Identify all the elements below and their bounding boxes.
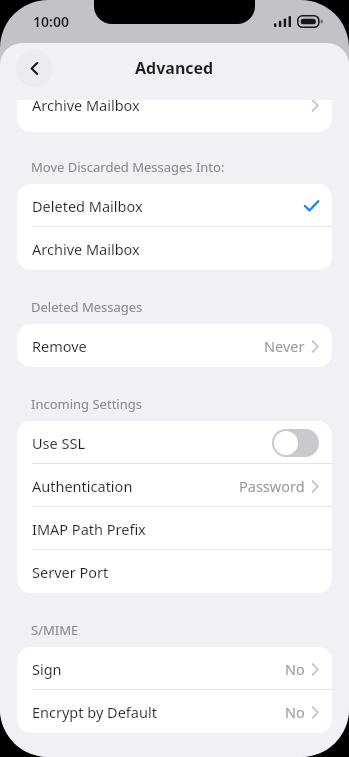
staticText: Authentication — [32, 476, 133, 496]
staticText: Never — [264, 336, 305, 356]
staticText: Deleted Messages — [31, 298, 143, 316]
button[interactable]: IMAP Path Prefix — [17, 507, 332, 550]
button[interactable]: Archive Mailbox — [17, 227, 332, 270]
button[interactable]: Back — [16, 50, 53, 87]
staticText: No — [285, 702, 305, 722]
staticText: Incoming Settings — [31, 395, 142, 413]
staticText: S/MIME — [31, 621, 79, 639]
staticText: IMAP Path Prefix — [32, 519, 146, 539]
staticText: No — [285, 659, 305, 679]
button[interactable]: Encrypt by Default — [17, 690, 332, 733]
button[interactable]: Deleted Mailbox — [17, 184, 332, 227]
button[interactable]: Use SSL — [272, 429, 319, 457]
staticText: Server Port — [32, 562, 109, 582]
staticText: Remove — [32, 336, 87, 356]
staticText: Use SSL — [32, 433, 86, 453]
button[interactable]: Use SSL — [17, 421, 332, 464]
staticText: Archive Mailbox — [32, 100, 140, 115]
staticText: Deleted Mailbox — [32, 196, 143, 216]
staticText: Archive Mailbox — [32, 239, 140, 259]
button[interactable]: Server Port — [17, 550, 332, 593]
staticText: Sign — [32, 659, 62, 679]
button[interactable]: Authentication — [17, 464, 332, 507]
staticText: Move Discarded Messages Into: — [31, 158, 225, 176]
staticText: Advanced — [135, 57, 214, 79]
staticText: Password — [239, 476, 305, 496]
button[interactable]: Archive Mailbox — [17, 100, 332, 132]
staticText: 10:00 — [33, 12, 69, 31]
button[interactable]: Remove — [17, 324, 332, 367]
staticText: Encrypt by Default — [32, 702, 157, 722]
button[interactable]: Sign — [17, 647, 332, 690]
